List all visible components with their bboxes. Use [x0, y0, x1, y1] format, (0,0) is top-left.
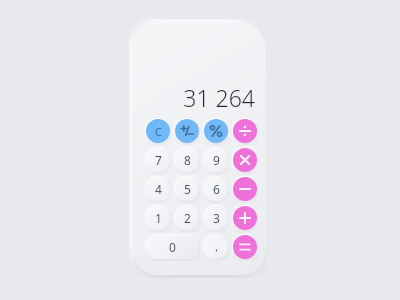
staticText: C — [155, 124, 162, 139]
button[interactable]: 9 — [204, 148, 228, 172]
button[interactable]: Plus minus sign change — [175, 119, 199, 143]
staticText: 3 — [213, 210, 220, 226]
staticText: 6 — [213, 181, 220, 197]
staticText: 2 — [184, 210, 191, 226]
staticText: 1 — [155, 210, 162, 226]
button[interactable]: Multiply — [233, 148, 257, 172]
staticText: 8 — [184, 152, 191, 168]
button[interactable]: 5 — [175, 177, 199, 201]
button[interactable]: Clear — [146, 119, 170, 143]
button[interactable]: , — [204, 235, 228, 259]
button[interactable]: 7 — [146, 148, 170, 172]
staticText: 9 — [213, 152, 220, 168]
staticText: 0 — [169, 239, 176, 255]
button[interactable]: Divide — [233, 119, 257, 143]
button[interactable]: 4 — [146, 177, 170, 201]
button[interactable]: Percent — [204, 119, 228, 143]
button[interactable]: 1 — [146, 206, 170, 230]
button[interactable]: 6 — [204, 177, 228, 201]
button[interactable]: Equals — [233, 235, 257, 259]
button[interactable]: 8 — [175, 148, 199, 172]
staticText: 7 — [155, 152, 162, 168]
button[interactable]: 2 — [175, 206, 199, 230]
staticText: , — [215, 240, 218, 254]
button[interactable]: Subtract — [233, 177, 257, 201]
staticText: 31 264 — [183, 82, 255, 108]
button[interactable]: 3 — [204, 206, 228, 230]
staticText: 4 — [155, 181, 162, 197]
button[interactable]: Add — [233, 206, 257, 230]
staticText: 5 — [184, 181, 191, 197]
button[interactable]: 0 — [146, 235, 199, 259]
